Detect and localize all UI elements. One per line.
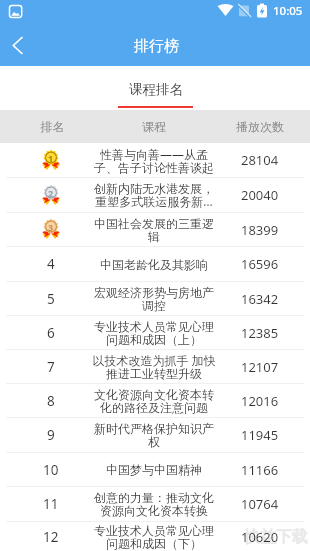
button[interactable]: 课程排名 bbox=[118, 66, 193, 108]
staticText: 专业技术人员常见心理问题和成因（下） bbox=[91, 523, 217, 551]
staticText: 中国梦与中国精神 bbox=[106, 462, 202, 477]
button[interactable]: 6 bbox=[0, 316, 310, 350]
button[interactable]: 11 bbox=[0, 487, 310, 522]
staticText: 8 bbox=[47, 392, 55, 410]
staticText: 3 bbox=[48, 221, 54, 233]
staticText: 4 bbox=[47, 255, 55, 273]
staticText: 快益下载 bbox=[244, 527, 308, 547]
button[interactable]: Back bbox=[0, 22, 38, 66]
staticText: 11945 bbox=[241, 426, 279, 444]
staticText: 宏观经济形势与房地产调控 bbox=[91, 285, 217, 313]
staticText: 专业技术人员常见心理问题和成因（上） bbox=[91, 319, 217, 347]
staticText: 10764 bbox=[241, 495, 279, 513]
staticText: 12016 bbox=[241, 392, 279, 410]
staticText: 12107 bbox=[241, 358, 279, 376]
staticText: 播放次数 bbox=[210, 119, 310, 134]
button[interactable]: 4 bbox=[0, 247, 310, 282]
staticText: 2 bbox=[48, 187, 54, 199]
staticText: 20040 bbox=[241, 186, 279, 204]
staticText: 课程 bbox=[91, 119, 217, 134]
staticText: 12385 bbox=[241, 324, 279, 342]
staticText: 10:05 bbox=[273, 3, 303, 19]
staticText: 课程排名 bbox=[129, 81, 183, 98]
staticText: 中国老龄化及其影响 bbox=[100, 257, 208, 272]
staticText: 1 bbox=[48, 152, 54, 164]
staticText: 12 bbox=[43, 528, 59, 546]
staticText: 10620 bbox=[241, 528, 279, 546]
staticText: 16342 bbox=[241, 290, 279, 308]
button[interactable]: 2 bbox=[0, 178, 310, 213]
staticText: 排名 bbox=[4, 119, 101, 134]
staticText: 中国社会发展的三重逻辑 bbox=[91, 216, 217, 244]
button[interactable]: 1 bbox=[0, 143, 310, 178]
staticText: 18399 bbox=[241, 221, 279, 239]
staticText: 排行榜 bbox=[134, 37, 179, 56]
staticText: 10 bbox=[43, 461, 59, 479]
staticText: 创新内陆无水港发展，重塑多式联运服务新… bbox=[91, 181, 217, 210]
staticText: 性善与向善——从孟子、告子讨论性善谈起 bbox=[91, 146, 217, 175]
button[interactable]: 9 bbox=[0, 418, 310, 453]
button[interactable]: 3 bbox=[0, 213, 310, 247]
staticText: 9 bbox=[47, 426, 55, 444]
staticText: 5 bbox=[47, 290, 55, 308]
staticText: 11 bbox=[43, 495, 59, 513]
staticText: 文化资源向文化资本转化的路径及注意问题 bbox=[91, 387, 217, 415]
staticText: 6 bbox=[47, 324, 55, 342]
button[interactable]: 10 bbox=[0, 453, 310, 487]
staticText: 11166 bbox=[241, 461, 279, 479]
staticText: 16596 bbox=[241, 255, 279, 273]
button[interactable]: 12 bbox=[0, 522, 310, 551]
staticText: 新时代严格保护知识产权 bbox=[91, 421, 217, 449]
staticText: 以技术改造为抓手 加快推进工业转型升级 bbox=[91, 352, 217, 381]
staticText: 28104 bbox=[241, 151, 279, 169]
button[interactable]: 7 bbox=[0, 350, 310, 384]
button[interactable]: 5 bbox=[0, 282, 310, 316]
staticText: 7 bbox=[47, 358, 55, 376]
button[interactable]: 8 bbox=[0, 384, 310, 418]
staticText: 创意的力量：推动文化资源向文化资本转换 bbox=[91, 490, 217, 518]
